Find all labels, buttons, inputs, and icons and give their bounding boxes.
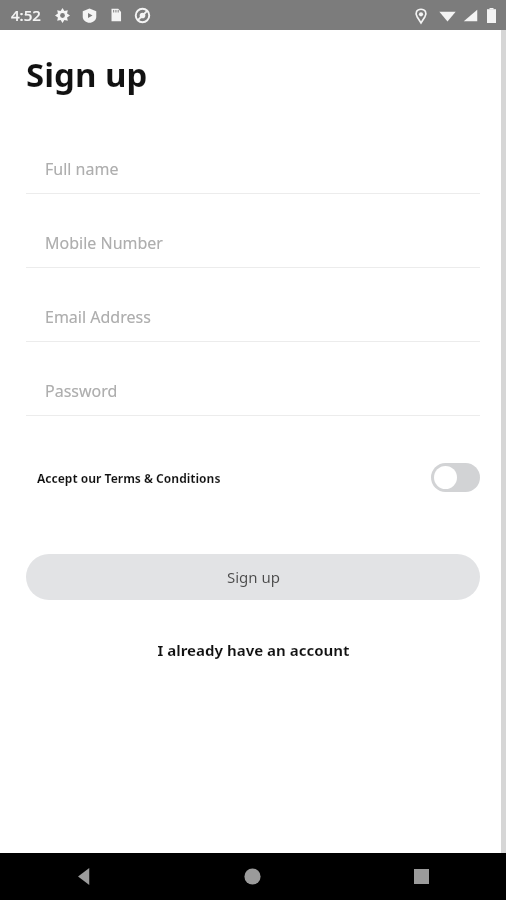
staticText: Password [45, 380, 118, 402]
staticText: Full name [45, 158, 119, 180]
button[interactable]: Sign up [26, 554, 480, 600]
button[interactable]: Accept our Terms & Conditions [0, 463, 506, 492]
staticText: 4:52 [11, 5, 41, 25]
button[interactable]: Accept terms toggle [431, 463, 480, 492]
staticText: Mobile Number [45, 232, 163, 254]
button[interactable]: Full name [0, 145, 506, 219]
button[interactable]: Email Address [0, 293, 506, 367]
button[interactable]: I already have an account [0, 634, 506, 666]
button[interactable]: Home [168, 853, 337, 900]
staticText: Sign up [227, 567, 280, 587]
staticText: Sign up [26, 52, 148, 97]
button[interactable]: Mobile Number [0, 219, 506, 293]
staticText: Accept our Terms & Conditions [37, 470, 221, 486]
button[interactable]: Recent apps [337, 853, 506, 900]
button[interactable]: Back [0, 853, 168, 900]
staticText: Email Address [45, 306, 151, 328]
staticText: I already have an account [157, 640, 350, 660]
button[interactable]: Password [0, 367, 506, 441]
